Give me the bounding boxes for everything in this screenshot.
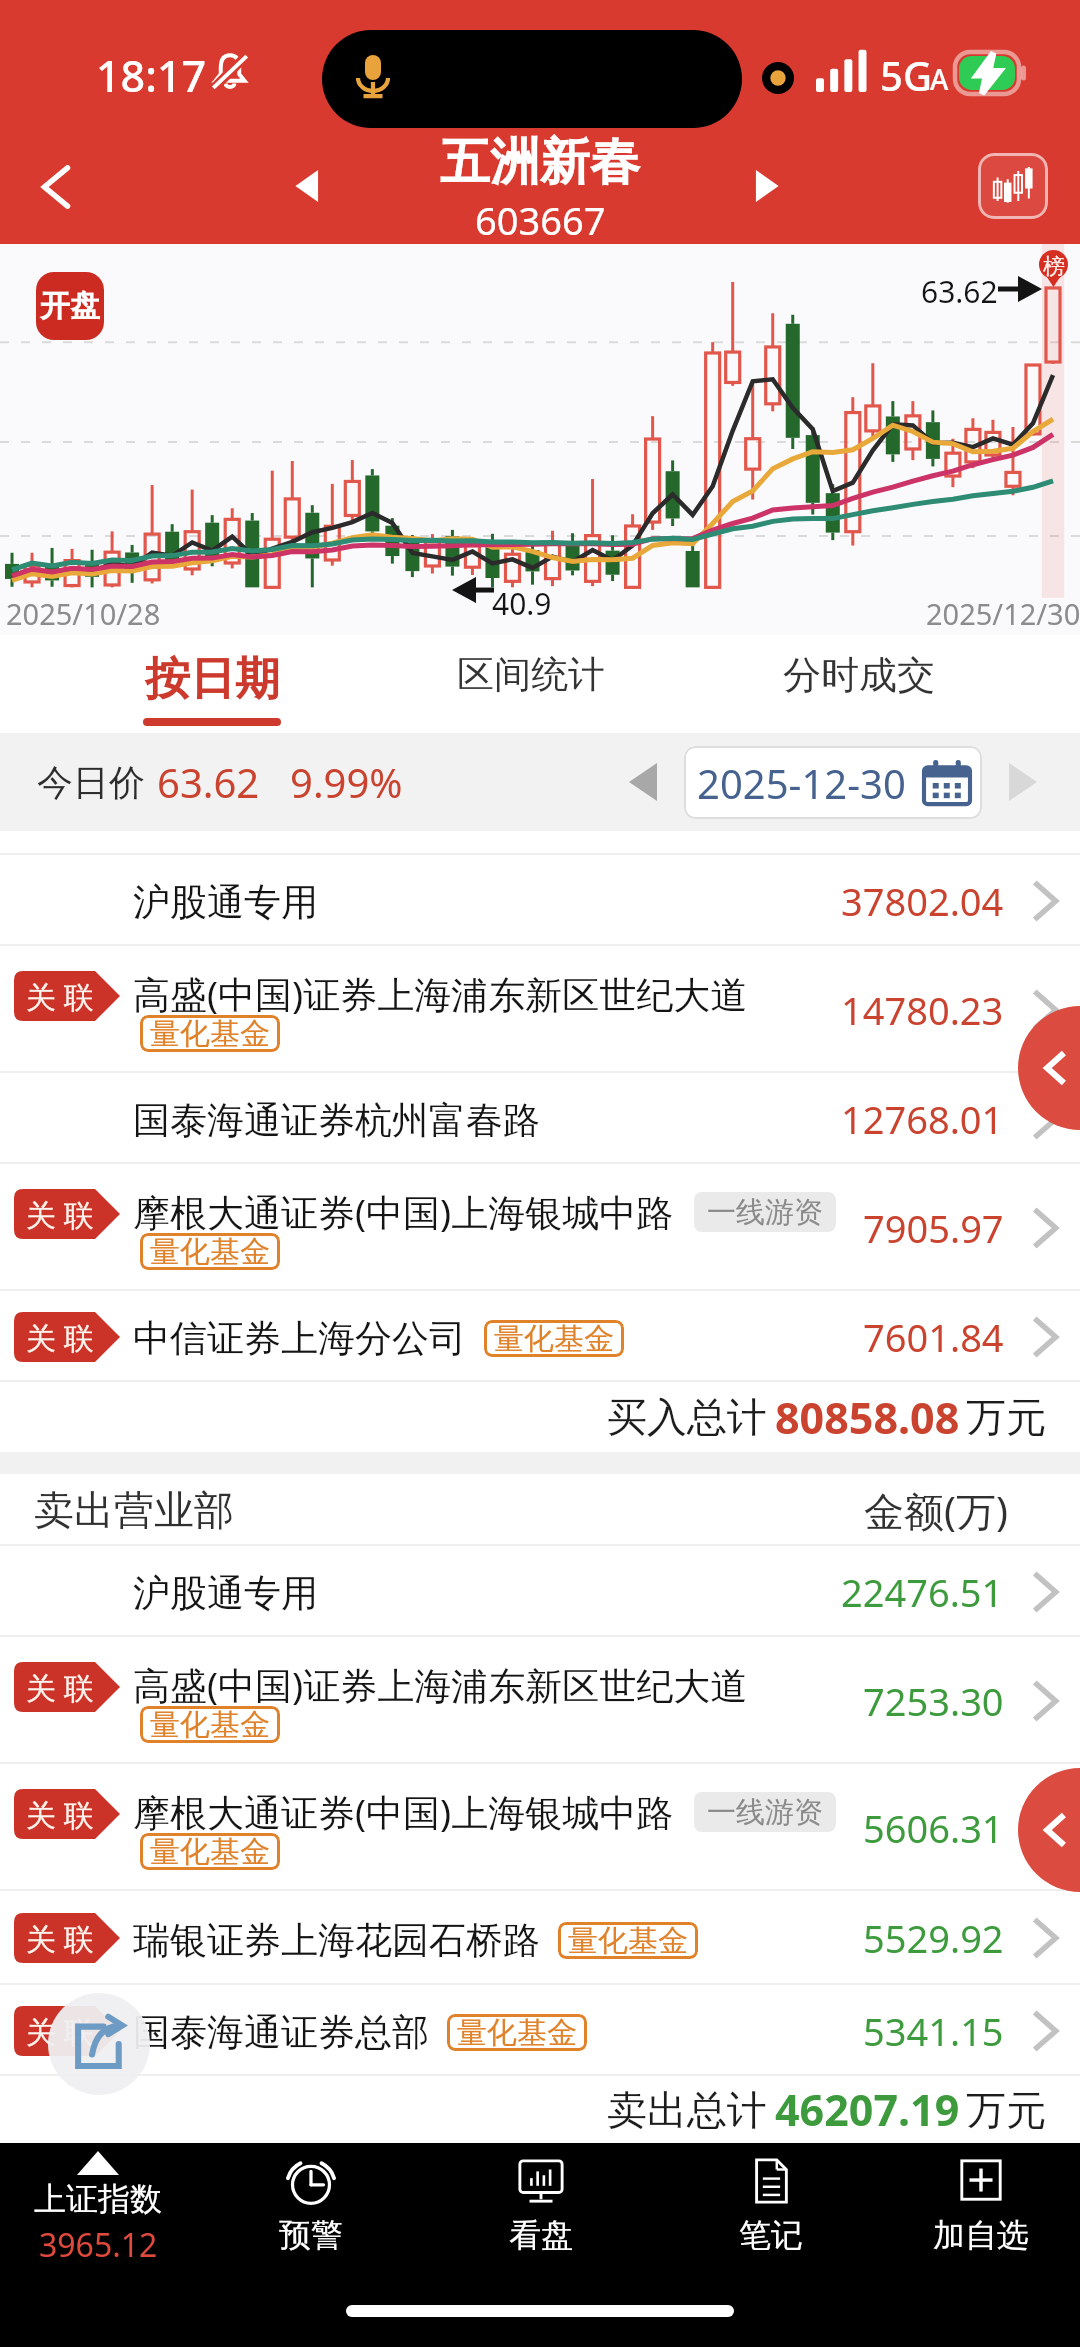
staticText: 万元 (966, 2085, 1046, 2135)
staticText: 关 联 (26, 1194, 94, 1235)
staticText: 14780.23 (841, 984, 1004, 1036)
staticText: 预警 (279, 2215, 343, 2255)
staticText: 今日价 (37, 760, 145, 805)
staticText: 2025/12/30 (926, 594, 1080, 633)
button[interactable]: 按日期 (62, 635, 362, 733)
staticText: 关 联 (26, 976, 94, 1017)
button[interactable]: Collapse panel (1018, 1006, 1080, 1130)
staticText: 3965.12 (39, 2223, 158, 2267)
staticText: 量化基金 (150, 1706, 270, 1743)
staticText: 7905.97 (863, 1202, 1004, 1254)
staticText: 区间统计 (457, 651, 605, 698)
button[interactable]: 关 联 (0, 1985, 1080, 2076)
button[interactable]: 区间统计 (381, 635, 681, 733)
button[interactable]: Next stock (722, 142, 810, 230)
button[interactable]: Previous day (612, 751, 674, 813)
button[interactable]: 关 联 (0, 1291, 1080, 1382)
staticText: 80858.08 (775, 1388, 960, 1447)
staticText: 高盛(中国)证券上海浦东新区世纪大道 (133, 1659, 748, 1710)
button[interactable]: 关 联 (0, 1764, 1080, 1891)
staticText: 2025-12-30 (697, 756, 906, 810)
staticText: A (930, 60, 949, 98)
staticText: 关 联 (26, 1667, 94, 1708)
staticText: 万元 (966, 1392, 1046, 1442)
staticText: 22476.51 (841, 1566, 1004, 1618)
staticText: 分时成交 (783, 651, 935, 699)
staticText: 量化基金 (568, 1922, 688, 1959)
staticText: 关 联 (26, 1794, 94, 1835)
staticText: 40.9 (492, 583, 552, 624)
button[interactable]: Next day (992, 751, 1054, 813)
button[interactable]: 关 联 (0, 1637, 1080, 1764)
staticText: 卖出营业部 (34, 1485, 234, 1535)
button[interactable]: Back (6, 137, 106, 237)
button[interactable]: Previous stock (264, 142, 352, 230)
button[interactable]: 笔记 (663, 2143, 879, 2303)
staticText: 加自选 (933, 2215, 1029, 2255)
staticText: 国泰海通证券杭州富春路 (133, 1097, 540, 1144)
staticText: 46207.19 (775, 2080, 960, 2139)
staticText: 37802.04 (841, 875, 1004, 927)
button[interactable]: 关 联 (0, 1164, 1080, 1291)
staticText: 关 联 (26, 2011, 94, 2052)
staticText: 603667 (475, 194, 606, 245)
staticText: 沪股通专用 (133, 1570, 318, 1617)
button[interactable]: 沪股通专用 (0, 1546, 1080, 1637)
button[interactable]: 国泰海通证券杭州富春路 (0, 1073, 1080, 1164)
staticText: 量化基金 (150, 1833, 270, 1870)
button[interactable]: 2025-12-30 (684, 746, 982, 819)
staticText: 一线游资 (707, 1794, 823, 1831)
staticText: 5G (880, 48, 932, 102)
button[interactable]: 分时成交 (709, 635, 1009, 733)
button[interactable]: Collapse panel (1018, 1768, 1080, 1892)
staticText: 12768.01 (841, 1093, 1004, 1145)
staticText: 开 (40, 287, 70, 325)
staticText: 摩根大通证券(中国)上海银城中路 (133, 1186, 674, 1237)
staticText: 看盘 (509, 2215, 573, 2255)
staticText: 上证指数 (34, 2179, 162, 2219)
staticText: 买入总计 (607, 1392, 767, 1442)
button[interactable]: 看盘 (433, 2143, 649, 2303)
staticText: 关 联 (26, 1918, 94, 1959)
staticText: 高盛(中国)证券上海浦东新区世纪大道 (133, 968, 748, 1019)
staticText: 盘 (70, 287, 100, 325)
staticText: 沪股通专用 (133, 879, 318, 926)
button[interactable]: 关 联 (0, 1891, 1080, 1985)
staticText: 摩根大通证券(中国)上海银城中路 (133, 1786, 674, 1837)
staticText: 榜 (1043, 253, 1065, 281)
staticText: 瑞银证券上海花园石桥路 (133, 1917, 540, 1964)
button[interactable]: 上证指数 (0, 2143, 206, 2303)
button[interactable]: 加自选 (873, 2143, 1080, 2303)
staticText: 中信证券上海分公司 (133, 1315, 466, 1362)
staticText: 量化基金 (150, 1233, 270, 1270)
staticText: 量化基金 (457, 2014, 577, 2051)
staticText: 5341.15 (863, 2005, 1004, 2057)
staticText: 量化基金 (150, 1015, 270, 1052)
button[interactable]: 关 联 (0, 946, 1080, 1073)
staticText: 63.62 (921, 271, 998, 312)
staticText: 按日期 (145, 651, 280, 708)
staticText: 7253.30 (863, 1675, 1004, 1727)
button[interactable]: 预警 (203, 2143, 419, 2303)
button[interactable]: Share (48, 1993, 150, 2095)
staticText: 五洲新春 (440, 131, 640, 194)
staticText: 笔记 (739, 2215, 803, 2255)
staticText: 5529.92 (863, 1912, 1004, 1964)
staticText: 9.99% (290, 755, 403, 809)
button[interactable]: 沪股通专用 (0, 855, 1080, 946)
staticText: 量化基金 (494, 1320, 614, 1357)
staticText: 金额(万) (864, 1483, 1008, 1538)
staticText: 63.62 (157, 755, 260, 809)
staticText: 2025/10/28 (6, 594, 161, 633)
button[interactable]: K-line chart (978, 153, 1048, 219)
staticText: 18:17 (96, 46, 207, 105)
staticText: 关 联 (26, 1317, 94, 1358)
staticText: 7601.84 (863, 1311, 1004, 1363)
staticText: 卖出总计 (607, 2085, 767, 2135)
staticText: 一线游资 (707, 1194, 823, 1231)
staticText: 5606.31 (863, 1802, 1004, 1854)
staticText: 国泰海通证券总部 (133, 2009, 429, 2056)
